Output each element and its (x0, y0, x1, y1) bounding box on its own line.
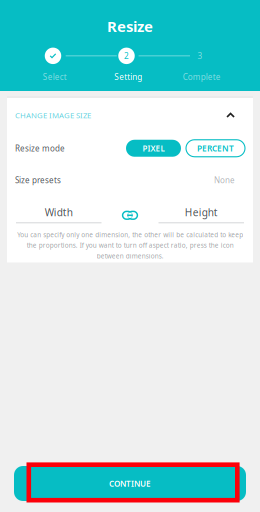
staticText: None (214, 174, 235, 185)
staticText: PIXEL (142, 143, 164, 154)
staticText: PERCENT (197, 143, 234, 154)
button[interactable]: Size presets (7, 164, 253, 196)
staticText: You can specify only one dimension, the … (17, 230, 243, 260)
staticText: Width (45, 205, 73, 219)
staticText: Select (43, 71, 67, 82)
staticText: 2 (124, 50, 129, 61)
staticText: Height (185, 205, 218, 219)
button[interactable]: PIXEL (126, 140, 181, 157)
button[interactable]: CONTINUE (14, 466, 246, 501)
staticText: Resize (107, 16, 153, 36)
staticText: Size presets (15, 174, 61, 185)
button[interactable]: Toggle aspect ratio lock (123, 211, 137, 219)
staticText: CHANGE IMAGE SIZE (15, 110, 91, 120)
staticText: Setting (114, 71, 142, 82)
button[interactable]: PERCENT (186, 140, 245, 157)
staticText: CONTINUE (109, 478, 151, 489)
button[interactable]: CHANGE IMAGE SIZE (7, 98, 253, 132)
staticText: Complete (183, 71, 221, 82)
staticText: Resize mode (15, 143, 65, 154)
staticText: 3 (197, 50, 202, 61)
